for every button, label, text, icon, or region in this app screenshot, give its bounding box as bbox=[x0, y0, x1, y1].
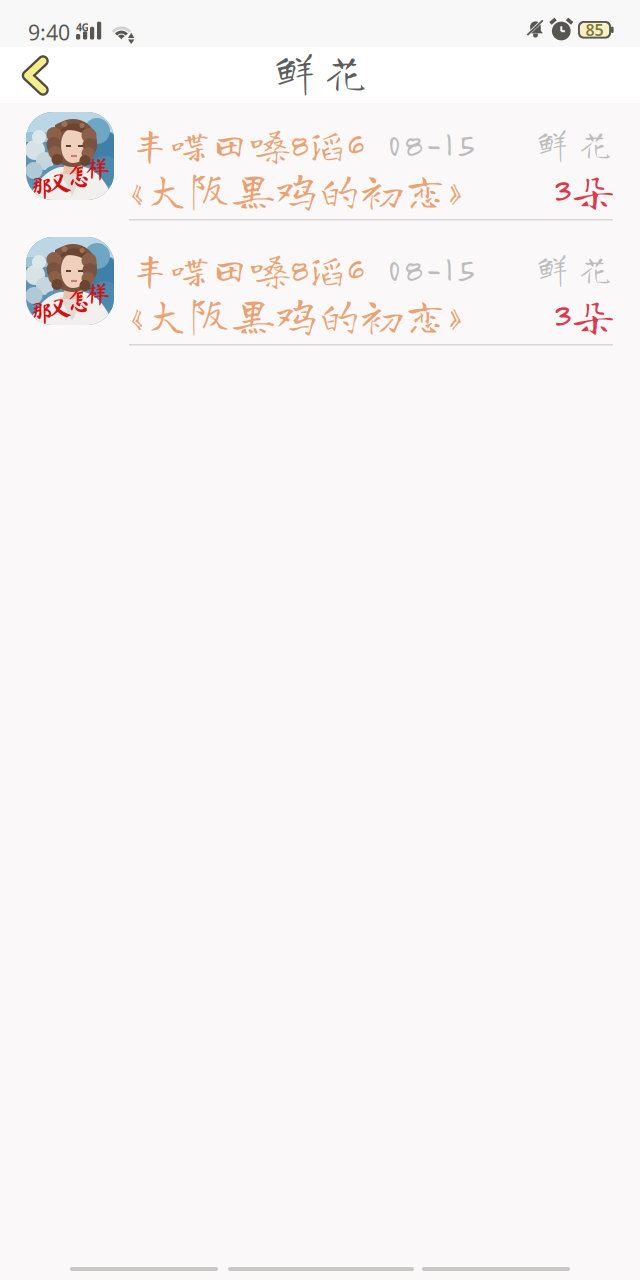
staticText: 那 bbox=[28, 301, 53, 326]
staticText: 鲜花 bbox=[535, 251, 613, 286]
staticText: 《大阪黑鸡的初恋》 bbox=[103, 293, 490, 336]
staticText: 丰喋田嗓8滔6 bbox=[130, 124, 362, 164]
staticText: 怎 bbox=[66, 288, 91, 313]
staticText: 08-15 bbox=[388, 124, 473, 164]
staticText: 样 bbox=[85, 281, 110, 306]
staticText: 怎 bbox=[66, 163, 91, 188]
staticText: 丰喋田嗓8滔6 bbox=[130, 249, 362, 289]
staticText: 那 bbox=[28, 176, 53, 201]
staticText: 《大阪黑鸡的初恋》 bbox=[103, 168, 490, 211]
staticText: 9:40 bbox=[28, 18, 70, 46]
button[interactable]: 那 bbox=[0, 103, 640, 228]
staticText: 样 bbox=[85, 156, 110, 181]
staticText: 又 bbox=[47, 295, 72, 320]
staticText: 3朵 bbox=[553, 169, 615, 212]
staticText: 鲜花 bbox=[535, 126, 613, 161]
button[interactable]: Back bbox=[0, 47, 70, 103]
staticText: 4G bbox=[76, 20, 89, 34]
staticText: 鲜花 bbox=[272, 48, 368, 94]
staticText: 3朵 bbox=[553, 294, 615, 337]
staticText: 08-15 bbox=[388, 249, 473, 289]
staticText: 又 bbox=[47, 170, 72, 195]
button[interactable]: 那 bbox=[0, 228, 640, 353]
staticText: 85 bbox=[585, 19, 603, 40]
